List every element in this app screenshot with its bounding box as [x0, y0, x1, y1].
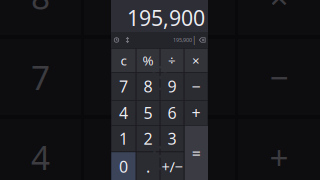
staticText: 8 — [31, 0, 50, 19]
staticText: − — [192, 76, 201, 97]
button[interactable]: 1 — [111, 126, 136, 151]
staticText: % — [143, 51, 154, 69]
staticText: 9 — [168, 76, 177, 97]
button[interactable]: % — [136, 49, 160, 72]
staticText: + — [192, 102, 201, 123]
staticText: 195,900 — [127, 4, 205, 32]
staticText: 4 — [119, 102, 128, 123]
staticText: 0 — [119, 156, 128, 177]
button[interactable]: +/− — [160, 152, 184, 180]
staticText: c — [120, 51, 126, 69]
staticText: 5 — [144, 102, 153, 123]
button[interactable]: + — [184, 101, 208, 125]
button[interactable]: 5 — [136, 101, 160, 125]
button[interactable]: c — [111, 49, 136, 72]
button[interactable]: History — [111, 32, 122, 48]
staticText: 3 — [168, 128, 177, 149]
staticText: 6 — [168, 102, 177, 123]
button[interactable]: 0 — [111, 152, 136, 180]
staticText: | — [192, 35, 196, 45]
button[interactable]: ÷ — [160, 49, 184, 72]
button[interactable]: − — [184, 73, 208, 100]
staticText: 8 — [150, 55, 169, 99]
staticText: × — [269, 0, 288, 19]
staticText: + — [269, 135, 288, 179]
button[interactable]: = — [185, 126, 208, 180]
button[interactable]: 2 — [136, 126, 160, 151]
button[interactable]: 3 — [160, 126, 184, 151]
button[interactable]: 7 — [111, 73, 136, 100]
staticText: ÷ — [168, 51, 176, 69]
button[interactable]: × — [184, 49, 208, 72]
staticText: 4 — [31, 135, 50, 179]
button[interactable]: 9 — [160, 73, 184, 100]
staticText: 1 — [119, 128, 128, 149]
staticText: 5 — [150, 135, 169, 179]
staticText: 7 — [31, 55, 50, 99]
staticText: − — [269, 55, 288, 99]
staticText: 2 — [144, 128, 153, 149]
staticText: 8 — [144, 76, 153, 97]
staticText: 7 — [119, 76, 128, 97]
button[interactable]: . — [136, 152, 160, 180]
staticText: +/− — [162, 157, 183, 176]
staticText: 9 — [150, 0, 169, 19]
button[interactable]: 4 — [111, 101, 136, 125]
staticText: . — [146, 156, 150, 177]
button[interactable]: Delete — [198, 32, 206, 48]
button[interactable]: 8 — [136, 73, 160, 100]
staticText: = — [192, 143, 201, 164]
staticText: 195,900 — [173, 36, 192, 44]
staticText: × — [192, 51, 200, 69]
button[interactable]: 6 — [160, 101, 184, 125]
button[interactable]: Convert units — [122, 32, 133, 48]
